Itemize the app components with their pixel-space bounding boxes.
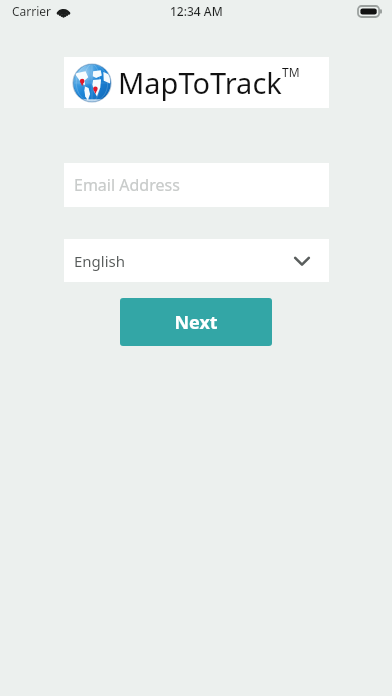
button[interactable]: English — [64, 239, 329, 282]
other: Battery full — [358, 6, 382, 17]
staticText: MapToTrack — [118, 63, 282, 102]
other: MapToTrack globe logo — [70, 61, 114, 105]
staticText: Carrier — [12, 3, 52, 19]
staticText: English — [74, 251, 126, 271]
button[interactable]: Email Address — [64, 163, 329, 207]
staticText: TM — [282, 64, 300, 80]
staticText: Next — [174, 310, 218, 335]
other: Select language — [293, 252, 311, 270]
button[interactable]: Next — [120, 298, 272, 346]
staticText: Email Address — [74, 174, 180, 196]
other: Wi-Fi — [57, 5, 70, 18]
staticText: 12:34 AM — [170, 3, 223, 19]
